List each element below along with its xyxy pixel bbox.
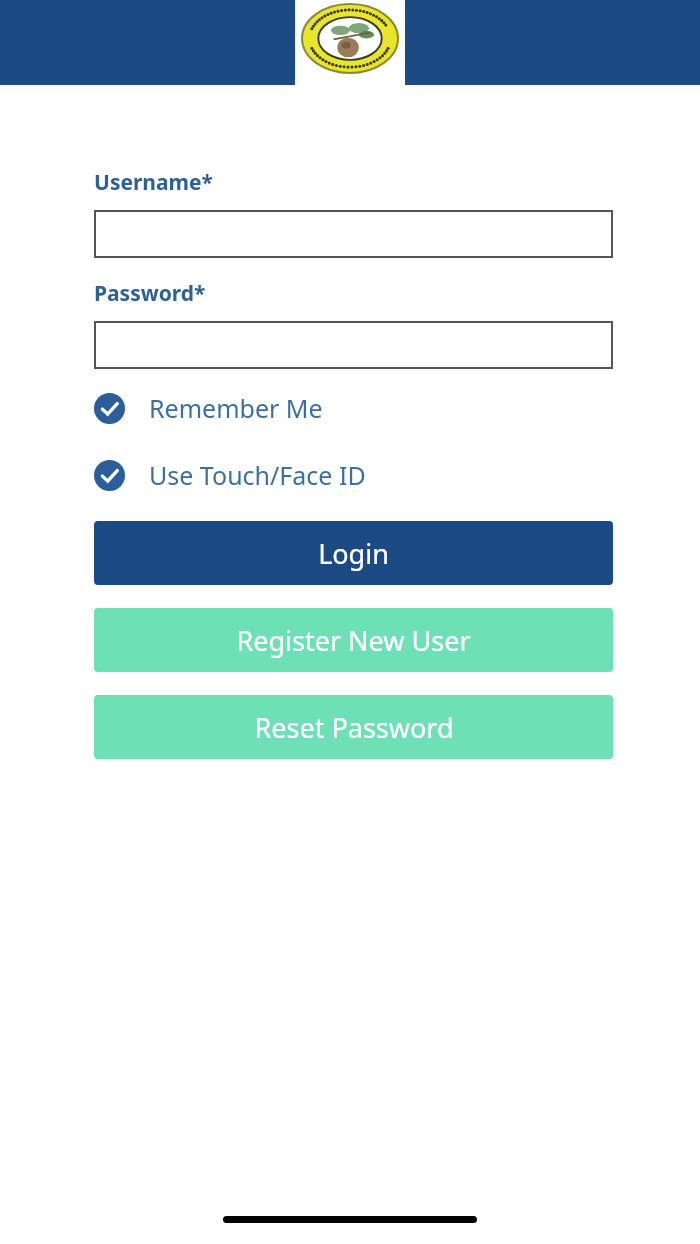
button[interactable]: Login xyxy=(94,521,613,585)
staticText: Username* xyxy=(94,168,213,197)
staticText: Use Touch/Face ID xyxy=(149,458,366,492)
staticText: Reset Password xyxy=(254,709,454,746)
staticText: Password* xyxy=(94,279,206,308)
button[interactable]: Reset Password xyxy=(94,695,613,759)
button[interactable]: Remember Me xyxy=(94,391,613,425)
staticText: Login xyxy=(318,535,389,572)
button[interactable] xyxy=(94,210,613,258)
button[interactable]: Use Touch/Face ID xyxy=(94,458,613,492)
other: Remember Me xyxy=(94,393,125,424)
button[interactable]: Register New User xyxy=(94,608,613,672)
staticText: Remember Me xyxy=(149,391,323,425)
button[interactable] xyxy=(94,321,613,369)
staticText: Register New User xyxy=(236,622,471,659)
other: Use Touch/Face ID xyxy=(94,460,125,491)
